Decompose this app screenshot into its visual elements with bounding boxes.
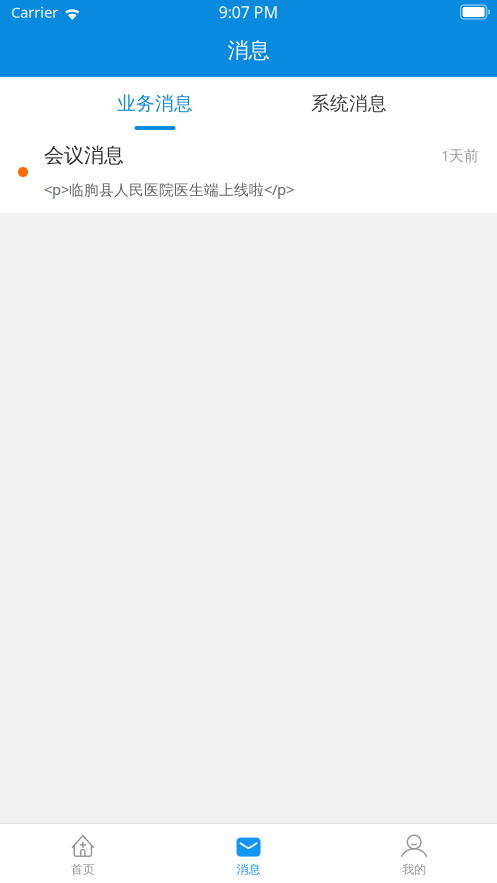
- button[interactable]: 首页: [0, 822, 166, 883]
- staticText: 9:07 PM: [218, 1, 278, 23]
- staticText: 消息: [236, 862, 260, 877]
- staticText: 我的: [402, 862, 426, 877]
- button[interactable]: 我的: [331, 822, 497, 883]
- staticText: 会议消息: [44, 143, 124, 168]
- staticText: Carrier: [11, 2, 58, 22]
- staticText: 首页: [71, 862, 95, 877]
- staticText: 消息: [227, 37, 269, 64]
- staticText: 业务消息: [117, 92, 193, 115]
- button[interactable]: 会议消息: [0, 130, 497, 213]
- button[interactable]: 消息: [166, 822, 331, 883]
- staticText: 1天前: [441, 145, 479, 165]
- button[interactable]: 业务消息: [58, 77, 252, 130]
- staticText: 系统消息: [311, 92, 387, 115]
- staticText: <p>临朐县人民医院医生端上线啦</p>: [44, 180, 294, 199]
- button[interactable]: 系统消息: [252, 77, 446, 130]
